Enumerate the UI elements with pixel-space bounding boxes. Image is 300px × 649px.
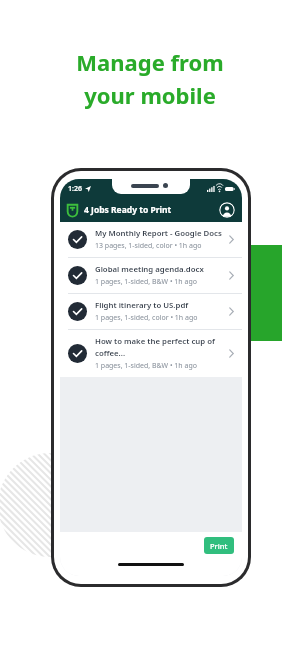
- button[interactable]: How to make the perfect cup of: [60, 330, 242, 377]
- staticText: My Monthly Report - Google Docs: [95, 228, 222, 239]
- button[interactable]: Print: [204, 537, 234, 554]
- button[interactable]: My Monthly Report - Google Docs: [60, 222, 242, 257]
- staticText: 13 pages, 1-sided, color • 1h ago: [95, 241, 202, 251]
- staticText: 1:26: [68, 184, 82, 194]
- staticText: 1 pages, 1-sided, B&W • 1h ago: [95, 361, 197, 371]
- staticText: coffee...: [95, 348, 126, 359]
- staticText: Global meeting agenda.docx: [95, 264, 204, 275]
- staticText: your mobile: [84, 80, 216, 110]
- other: App logo: [67, 204, 78, 217]
- button[interactable]: Flight itinerary to US.pdf: [60, 294, 242, 329]
- button[interactable]: Global meeting agenda.docx: [60, 258, 242, 293]
- button[interactable]: Account: [219, 202, 235, 218]
- staticText: How to make the perfect cup of: [95, 336, 215, 347]
- staticText: Flight itinerary to US.pdf: [95, 300, 189, 311]
- staticText: Manage from: [76, 47, 224, 77]
- staticText: Print: [210, 541, 228, 551]
- staticText: 1 pages, 1-sided, color • 1h ago: [95, 313, 198, 323]
- staticText: 4 Jobs Ready to Print: [84, 204, 172, 216]
- staticText: 1 pages, 1-sided, B&W • 1h ago: [95, 277, 197, 287]
